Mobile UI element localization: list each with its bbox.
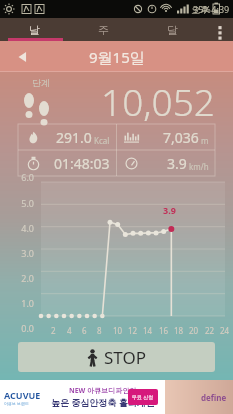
- button[interactable]: More options: [207, 18, 233, 41]
- button[interactable]: 주: [69, 18, 138, 41]
- staticText: ACUVUE: [4, 389, 41, 401]
- staticText: NEW 아큐브디파인의: [69, 386, 137, 396]
- staticText: 날: [29, 23, 40, 37]
- staticText: 12: [128, 325, 138, 336]
- staticText: 6.0: [21, 171, 34, 183]
- staticText: 높은 중심안정축 홀라개선: [51, 396, 155, 408]
- button[interactable]: 3.9: [116, 150, 215, 176]
- staticText: 단계: [32, 77, 50, 88]
- button[interactable]: Previous day: [10, 44, 36, 70]
- staticText: 오후 4:39: [191, 3, 230, 15]
- button[interactable]: ACUVUE: [0, 380, 233, 414]
- staticText: 0.0: [21, 322, 34, 334]
- staticText: 2: [51, 325, 56, 336]
- staticText: 20: [189, 325, 199, 336]
- staticText: 8: [97, 325, 102, 336]
- staticText: 10: [113, 325, 123, 336]
- staticText: 1.0: [21, 297, 34, 309]
- staticText: 9월15일: [89, 47, 145, 67]
- staticText: 35%: [193, 3, 211, 15]
- staticText: 2.0: [21, 272, 34, 284]
- button[interactable]: 7,036: [116, 124, 215, 150]
- staticText: 달: [167, 23, 178, 37]
- staticText: 7,036: [163, 128, 199, 147]
- staticText: 아큐브 브랜드: [4, 401, 30, 406]
- staticText: 18: [174, 325, 184, 336]
- staticText: STOP: [104, 346, 147, 369]
- staticText: 3.9: [167, 154, 187, 173]
- staticText: 무료 신청: [132, 394, 154, 401]
- button[interactable]: 달: [138, 18, 207, 41]
- button[interactable]: 291.0: [18, 124, 116, 150]
- staticText: 16: [159, 325, 169, 336]
- staticText: 14: [143, 325, 153, 336]
- staticText: 24: [220, 325, 230, 336]
- staticText: Kcal: [94, 135, 110, 146]
- staticText: 10,052: [101, 76, 215, 126]
- staticText: 291.0: [56, 128, 92, 147]
- staticText: 01:48:03: [54, 154, 110, 173]
- staticText: 주: [98, 23, 109, 37]
- staticText: 6: [82, 325, 87, 336]
- staticText: 5.0: [21, 197, 34, 209]
- staticText: km/h: [189, 161, 209, 172]
- button[interactable]: STOP: [18, 342, 215, 372]
- button[interactable]: 날: [0, 18, 69, 41]
- button[interactable]: 01:48:03: [18, 150, 116, 176]
- staticText: 4: [67, 325, 72, 336]
- staticText: 3.9: [163, 204, 176, 216]
- staticText: m: [201, 135, 209, 146]
- staticText: 3.0: [21, 247, 34, 259]
- staticText: 22: [205, 325, 215, 336]
- staticText: define: [201, 392, 227, 403]
- staticText: 4.0: [21, 222, 34, 234]
